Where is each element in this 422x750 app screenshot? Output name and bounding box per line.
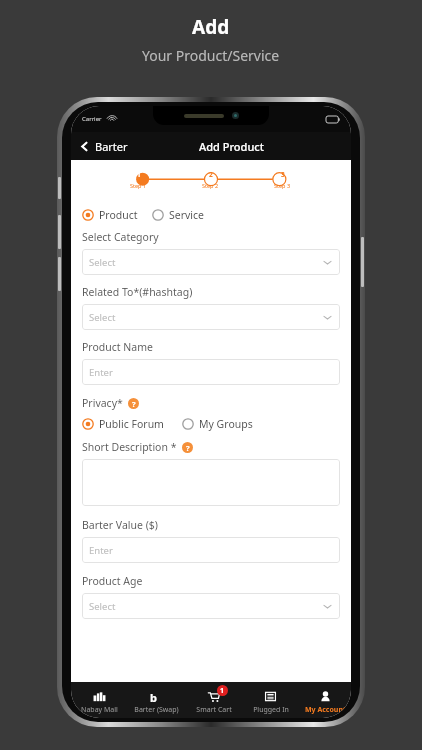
staticText: Enter: [89, 544, 333, 557]
button[interactable]: My Groups: [182, 415, 253, 433]
staticText: Nabay Mall: [81, 705, 118, 715]
staticText: Barter Value ($): [82, 518, 158, 532]
staticText: ?: [132, 399, 136, 409]
button[interactable]: Barter: [71, 139, 134, 154]
button[interactable]: 1: [185, 686, 242, 715]
staticText: ba: [150, 690, 163, 703]
button[interactable]: Service: [152, 206, 205, 224]
staticText: Carrier: [82, 115, 102, 123]
staticText: Select: [89, 311, 322, 324]
button[interactable]: My Account: [299, 686, 351, 715]
staticText: Add Product: [199, 139, 264, 154]
staticText: Product: [99, 208, 138, 222]
staticText: Barter (Swap): [134, 705, 179, 715]
button[interactable]: ba: [128, 686, 185, 715]
staticText: 3: [281, 170, 285, 179]
button[interactable]: Enter: [82, 359, 340, 385]
button[interactable]: [82, 459, 340, 506]
button[interactable]: Nabay Mall: [71, 686, 128, 715]
staticText: 1: [137, 170, 141, 179]
button[interactable]: Select: [82, 304, 340, 330]
staticText: Plugged In: [253, 705, 289, 715]
button[interactable]: Public Forum: [82, 415, 164, 433]
button[interactable]: Select: [82, 249, 340, 275]
staticText: Service: [169, 208, 205, 222]
staticText: Step 2: [202, 182, 219, 189]
staticText: Enter: [89, 366, 333, 379]
staticText: Related To*(#hashtag): [82, 285, 193, 299]
staticText: Select Category: [82, 230, 159, 244]
staticText: 2: [209, 170, 213, 179]
staticText: Select: [89, 256, 322, 269]
staticText: Step 3: [274, 182, 291, 189]
button[interactable]: Plugged In: [242, 686, 299, 715]
staticText: Your Product/Service: [142, 46, 280, 65]
staticText: 1: [220, 686, 225, 696]
staticText: Smart Cart: [196, 705, 232, 715]
button[interactable]: Help: [128, 398, 139, 409]
staticText: Barter: [95, 139, 128, 154]
staticText: ?: [186, 443, 190, 453]
staticText: Public Forum: [99, 417, 164, 431]
staticText: My Groups: [199, 417, 253, 431]
staticText: Product Name: [82, 340, 153, 354]
button[interactable]: Help: [182, 442, 193, 453]
staticText: Select: [89, 600, 322, 613]
button[interactable]: Enter: [82, 537, 340, 563]
staticText: Short Description *: [82, 440, 177, 454]
button[interactable]: Product: [82, 206, 138, 224]
staticText: Add: [192, 14, 230, 40]
button[interactable]: Select: [82, 593, 340, 619]
staticText: Privacy*: [82, 396, 123, 410]
staticText: Product Age: [82, 574, 143, 588]
staticText: Step 1: [130, 182, 147, 189]
staticText: My Account: [305, 705, 346, 715]
